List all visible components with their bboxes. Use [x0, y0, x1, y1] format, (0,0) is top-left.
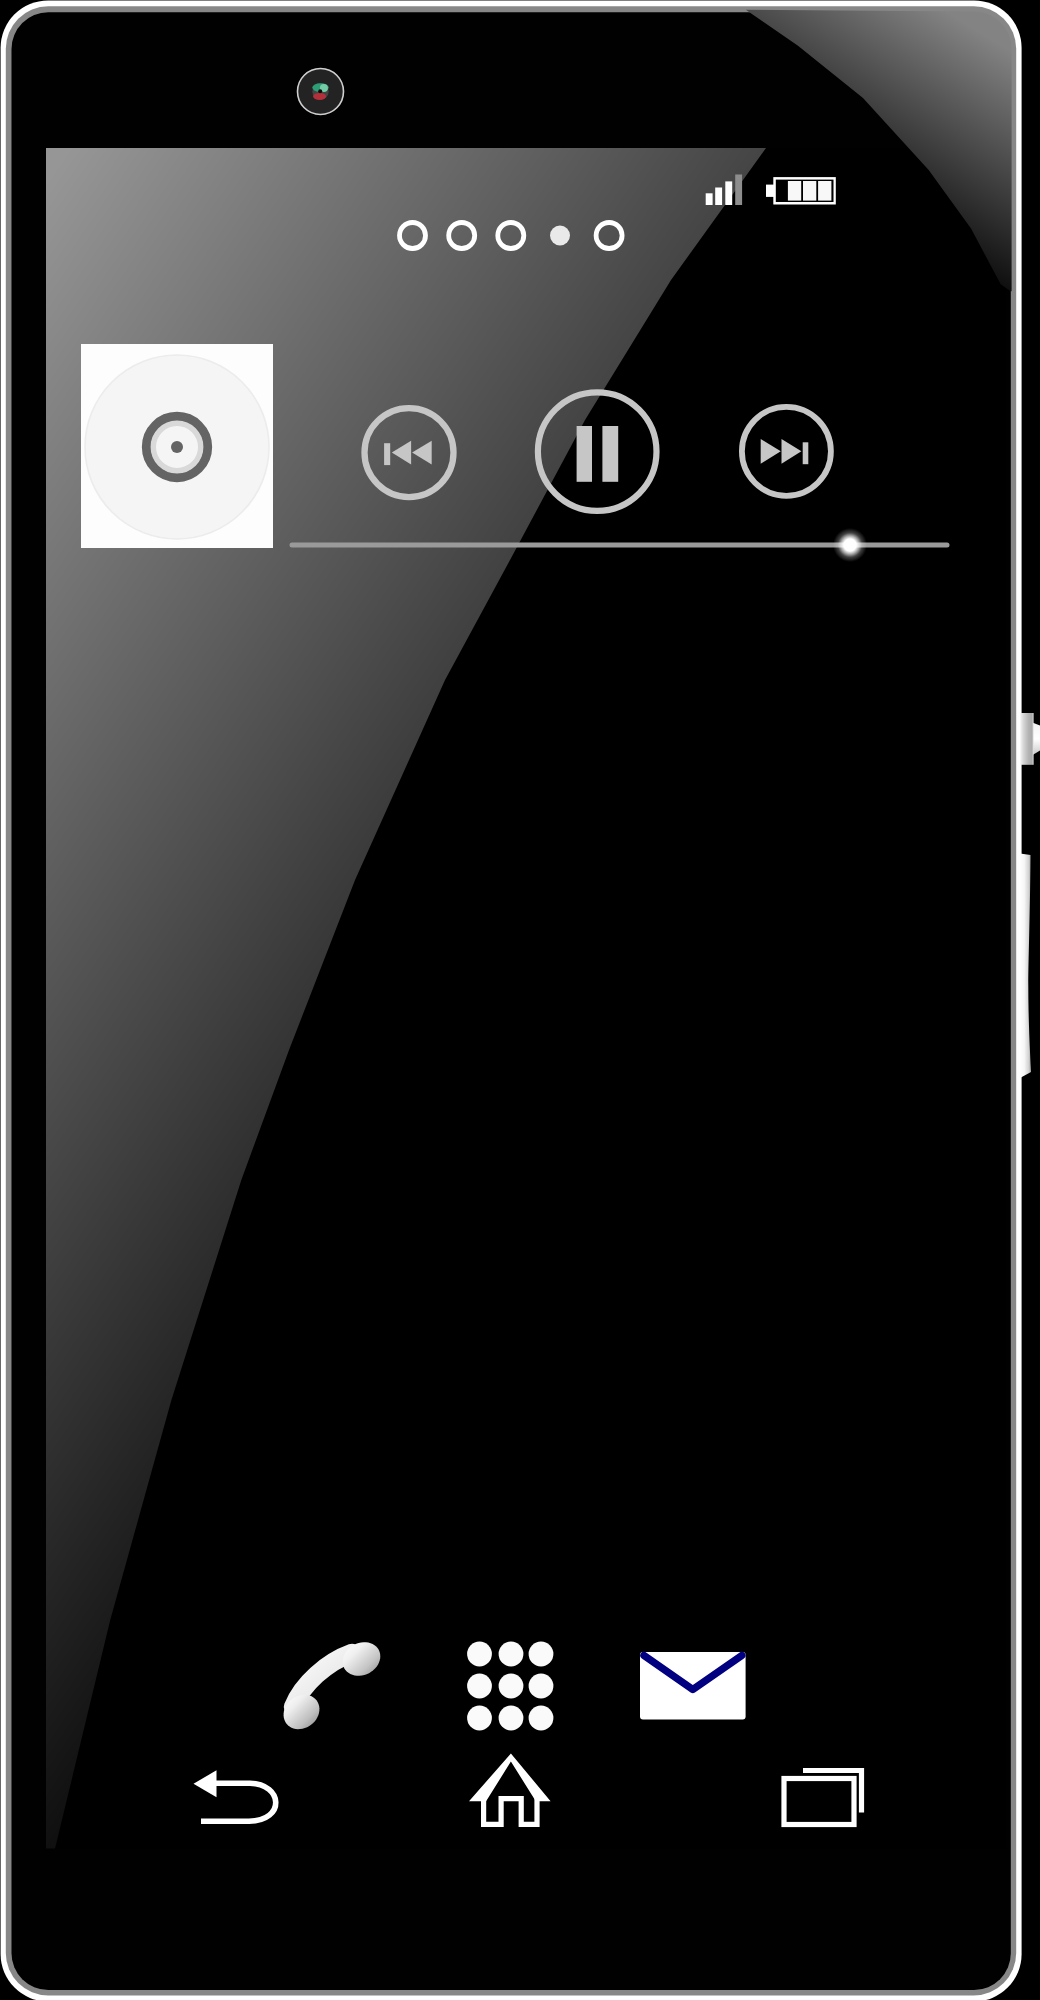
button[interactable]: Smartphone music player home screen	[0, 0, 1040, 2000]
